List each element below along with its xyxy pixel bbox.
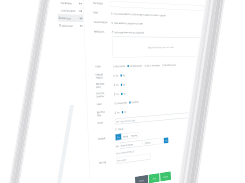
staticText: Sync <box>116 144 119 148</box>
button[interactable]: Weekly <box>121 133 130 140</box>
button[interactable]: Add <box>163 137 169 144</box>
button[interactable]: Reset Cases <box>58 14 83 22</box>
staticText: Unlimited number <box>130 64 142 67</box>
staticText: No <box>123 92 126 95</box>
button[interactable]: Server Base Epoch <box>57 6 83 15</box>
staticText: Weekly <box>123 135 128 138</box>
button[interactable]: No <box>121 83 125 86</box>
button[interactable]: Publish <box>160 171 171 182</box>
button[interactable]: Unlimited field <box>114 101 127 105</box>
button[interactable]: Yes <box>113 83 119 86</box>
button[interactable]: Start of feed without <box>144 64 160 67</box>
staticText: Best Price Page <box>97 109 113 117</box>
staticText: Show un-Newsletter list on Published are… <box>114 12 166 17</box>
staticText: Select a Date <box>117 158 127 162</box>
staticText: Unsubscribe Link <box>94 20 110 24</box>
button[interactable] <box>110 1 204 11</box>
staticText: Plain filled <box>131 100 139 104</box>
staticText: No <box>123 74 125 77</box>
staticText: Cancel <box>139 179 144 182</box>
button[interactable]: No <box>122 110 126 113</box>
button[interactable]: All days <box>144 138 162 146</box>
staticText: APT - Multi-channel Design <box>116 119 135 123</box>
staticText: Allow recipients to unsubscribe from ale… <box>114 21 143 25</box>
button[interactable]: Yes <box>113 74 118 77</box>
staticText: Chat Output <box>93 1 109 5</box>
staticText: Save <box>153 177 156 180</box>
button[interactable]: Cancel <box>135 175 148 183</box>
staticText: Write Outlook <box>115 64 125 68</box>
button[interactable]: Drag a field or block to this area to ad… <box>112 36 205 58</box>
staticText: Print Cost Summary <box>96 91 113 98</box>
button[interactable]: No <box>120 74 125 77</box>
staticText: Start Log <box>99 159 115 165</box>
button[interactable]: Notify reader when recipients unsubscrib… <box>112 31 144 34</box>
staticText: Yes <box>116 83 119 86</box>
button[interactable]: No <box>121 92 126 95</box>
button[interactable]: Yes <box>114 92 119 95</box>
staticText: Publish <box>163 175 168 178</box>
staticText: Change <box>118 127 123 131</box>
staticText: Notify reader when recipients unsubscrib… <box>114 31 144 34</box>
staticText: Highlight Products <box>96 72 112 79</box>
staticText: Notifications <box>94 30 110 33</box>
button[interactable]: Yes <box>114 111 119 114</box>
staticText: Bit unfold without <box>164 63 176 66</box>
staticText: Server Base Epoch <box>61 9 76 12</box>
staticText: Theme <box>97 120 114 125</box>
button[interactable]: Plain filled <box>129 100 139 104</box>
staticText: Drag a field or block to this area to ad… <box>148 46 174 49</box>
button[interactable]: Show un-Newsletter list on Published are… <box>111 12 166 17</box>
staticText: Yes <box>117 111 120 114</box>
staticText: No <box>124 110 126 113</box>
staticText: Day <box>117 135 120 139</box>
staticText: Public <box>93 11 110 15</box>
button[interactable]: Save <box>148 173 160 183</box>
staticText: Latest <box>97 101 113 106</box>
button[interactable]: Global Locked <box>58 22 83 30</box>
staticText: Start of feed without <box>147 64 160 67</box>
staticText: Colour <box>95 64 111 68</box>
staticText: Web Store Query <box>96 82 112 89</box>
button[interactable]: Change <box>115 127 123 131</box>
button[interactable]: Unlimited number <box>127 64 142 67</box>
staticText: Active scheduled times (2) <box>116 150 134 155</box>
staticText: Base Building <box>61 1 72 5</box>
staticText: No <box>123 83 125 86</box>
staticText: Yes <box>116 74 118 77</box>
staticText: every 15 minutes <box>121 143 133 147</box>
button[interactable]: Day <box>115 134 121 140</box>
button[interactable]: Base Building <box>57 0 83 7</box>
button[interactable]: every 15 minutes <box>120 140 143 149</box>
staticText: Reset Cases <box>61 16 71 20</box>
button[interactable]: Select a Date <box>116 153 151 164</box>
button[interactable]: Monthly <box>130 132 139 139</box>
staticText: All days <box>145 141 150 144</box>
button[interactable]: Write Outlook <box>113 64 125 68</box>
staticText: Monthly <box>131 134 137 137</box>
button[interactable]: Bit unfold without <box>162 63 176 66</box>
staticText: Unlimited field <box>117 101 127 105</box>
staticText: Schedule <box>98 136 114 141</box>
staticText: Yes <box>116 92 119 95</box>
button[interactable]: APT - Multi-channel Design <box>115 111 207 125</box>
button[interactable]: Allow recipients to unsubscribe from ale… <box>111 21 143 25</box>
staticText: Add <box>165 139 168 142</box>
staticText: Global Locked <box>61 24 73 27</box>
